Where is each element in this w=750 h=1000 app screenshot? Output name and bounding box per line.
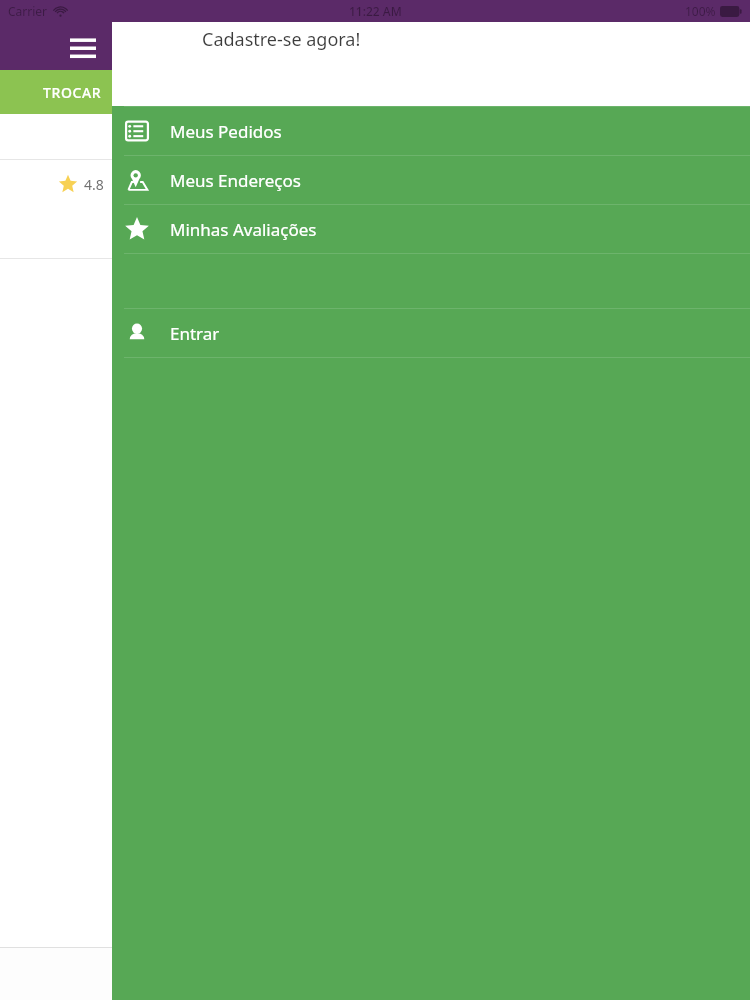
staticText: Cadastre-se agora! xyxy=(202,27,361,52)
staticText: Carrier xyxy=(8,3,48,19)
button[interactable]: Minhas Avaliações xyxy=(112,205,750,253)
staticText: Meus Pedidos xyxy=(170,120,282,143)
staticText: TROCAR xyxy=(43,83,102,102)
button[interactable]: Meus Endereços xyxy=(112,156,750,204)
staticText: Minhas Avaliações xyxy=(170,218,317,241)
staticText: 100% xyxy=(685,3,716,19)
button[interactable]: Entrar xyxy=(112,309,750,357)
button[interactable]: TROCAR xyxy=(0,70,112,114)
button[interactable]: Meus Pedidos xyxy=(112,107,750,155)
staticText: 11:22 AM xyxy=(349,3,402,19)
staticText: 4.8 xyxy=(84,175,104,194)
staticText: Entrar xyxy=(170,322,220,345)
staticText: Meus Endereços xyxy=(170,169,301,192)
button[interactable]: Open menu xyxy=(66,30,100,64)
